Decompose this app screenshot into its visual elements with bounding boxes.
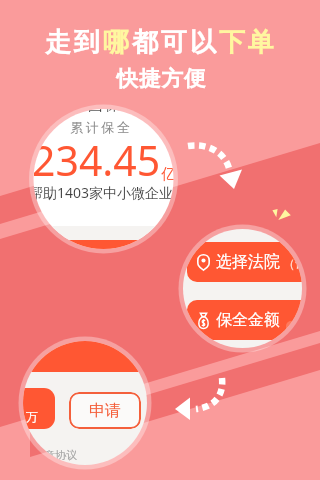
staticText: 申请 <box>89 401 121 421</box>
button[interactable]: 申请 <box>69 392 141 429</box>
staticText: 帮助1403家中小微企业 <box>29 183 174 202</box>
button[interactable]: 选择法院 <box>187 242 312 282</box>
staticText: 快捷方便 <box>116 65 206 92</box>
staticText: 走到 <box>45 26 103 59</box>
staticText: （请 <box>283 256 307 271</box>
staticText: 累计保全 <box>69 119 131 135</box>
staticText: 意协议 <box>44 448 77 462</box>
staticText: 选择法院 <box>216 252 280 272</box>
staticText: 亿 <box>161 165 172 184</box>
staticText: 哪 <box>103 26 132 59</box>
staticText: 234.45 <box>32 132 161 188</box>
staticText: 保全金额 <box>216 310 280 330</box>
staticText: 万 <box>26 409 38 424</box>
staticText: 全国保全 <box>70 96 138 115</box>
staticText: 下单 <box>219 26 277 59</box>
button[interactable]: 保全金额 <box>187 300 312 340</box>
staticText: 都可以 <box>132 26 219 59</box>
